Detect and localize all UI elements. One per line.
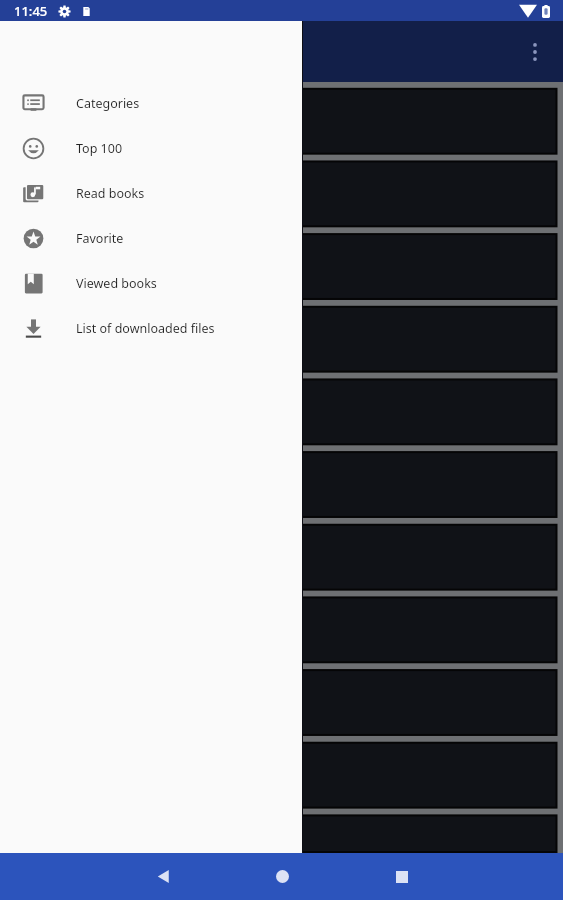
button[interactable] (0, 745, 557, 812)
button[interactable] (0, 818, 557, 853)
button[interactable] (0, 88, 557, 155)
button[interactable] (0, 161, 557, 228)
button[interactable] (0, 234, 557, 301)
button[interactable] (0, 453, 557, 520)
button[interactable] (0, 672, 557, 739)
staticText: Categories (76, 95, 140, 112)
button[interactable] (0, 307, 557, 374)
staticText: Favorite (76, 230, 124, 247)
staticText: 11:45 (14, 2, 48, 20)
button[interactable]: Read books (0, 171, 302, 216)
staticText: Top 100 (76, 140, 123, 157)
button[interactable]: Favorite (0, 216, 302, 261)
button[interactable] (0, 599, 557, 666)
button[interactable]: Back (139, 853, 187, 900)
button[interactable]: Home (258, 853, 306, 900)
button[interactable]: Top 100 (0, 126, 302, 171)
staticText: Viewed books (76, 275, 157, 292)
button[interactable]: Recents (378, 853, 426, 900)
button[interactable]: Categories (0, 81, 302, 126)
button[interactable]: Viewed books (0, 261, 302, 306)
button[interactable]: More options (515, 32, 555, 72)
button[interactable]: List of downloaded files (0, 306, 302, 351)
staticText: Read books (76, 185, 145, 202)
button[interactable] (0, 380, 557, 447)
button[interactable] (0, 526, 557, 593)
staticText: List of downloaded files (76, 320, 215, 337)
